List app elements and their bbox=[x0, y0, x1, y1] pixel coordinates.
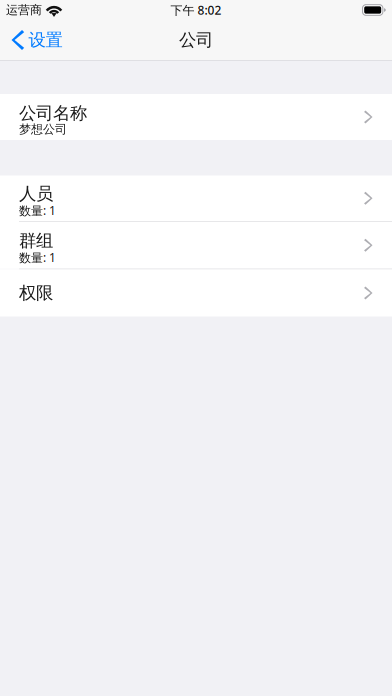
staticText: 权限 bbox=[19, 282, 53, 304]
staticText: 人员 bbox=[19, 183, 53, 204]
staticText: 数量: 1 bbox=[19, 249, 56, 265]
button[interactable]: 人员 bbox=[0, 175, 392, 221]
staticText: 梦想公司 bbox=[19, 122, 67, 136]
staticText: 下午 8:02 bbox=[170, 2, 221, 18]
button[interactable]: 设置 bbox=[0, 20, 72, 60]
staticText: 运营商 bbox=[6, 3, 42, 17]
button[interactable]: 公司名称 bbox=[0, 94, 392, 140]
staticText: 群组 bbox=[19, 230, 53, 251]
staticText: 设置 bbox=[28, 29, 62, 51]
staticText: 公司 bbox=[179, 29, 213, 51]
button[interactable]: 权限 bbox=[0, 269, 392, 316]
staticText: 公司名称 bbox=[19, 102, 87, 124]
button[interactable]: 群组 bbox=[0, 222, 392, 268]
staticText: 数量: 1 bbox=[19, 202, 56, 218]
